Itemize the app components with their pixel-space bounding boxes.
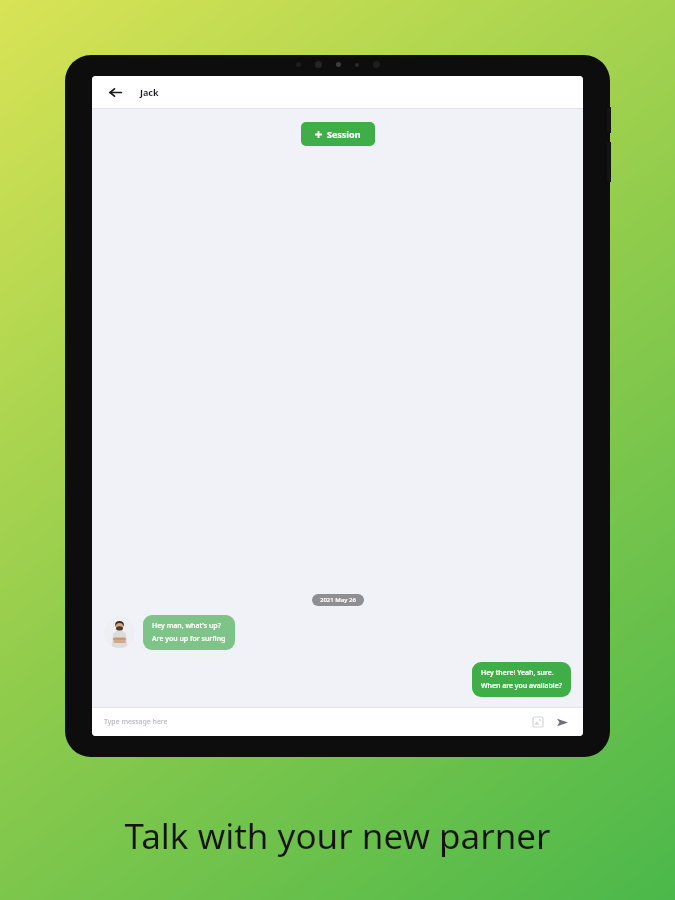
button[interactable]: Send — [553, 713, 571, 731]
staticText: Hey man, what's up? — [152, 621, 221, 631]
staticText: 2021 May 26 — [320, 596, 356, 604]
staticText: Talk with your new parner — [0, 812, 675, 860]
staticText: Session — [327, 128, 361, 140]
button[interactable]: Hey there! Yeah, sure. — [472, 662, 571, 697]
button[interactable]: Type message here — [104, 717, 529, 727]
button[interactable]: Back — [104, 81, 126, 103]
button[interactable]: Hey man, what's up? — [143, 615, 235, 650]
staticText: Are you up for surfing — [152, 634, 226, 644]
staticText: Hey there! Yeah, sure. — [481, 668, 554, 678]
button[interactable]: Attach image — [529, 713, 547, 731]
staticText: Type message here — [104, 717, 168, 727]
staticText: When are you available? — [481, 681, 562, 691]
button[interactable]: Session — [301, 122, 375, 146]
staticText: Jack — [140, 86, 159, 98]
